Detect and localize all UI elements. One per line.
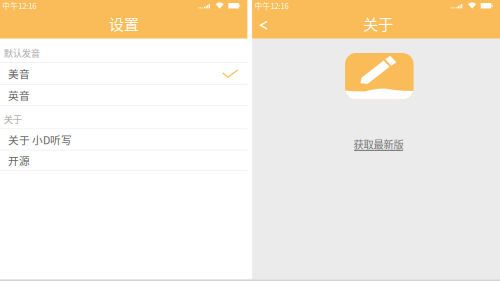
staticText: 设置 — [109, 12, 139, 34]
button[interactable]: 开源 — [0, 151, 248, 171]
staticText: 关于 — [4, 112, 22, 126]
staticText: 中午12:16 — [2, 0, 36, 11]
staticText: 中午12:16 — [254, 0, 288, 11]
staticText: 开源 — [8, 153, 30, 168]
staticText: 关于 — [363, 12, 393, 34]
button[interactable]: 获取最新版 — [354, 136, 404, 151]
button[interactable]: 英音 — [0, 85, 248, 106]
button[interactable]: 关于 小D听写 — [0, 129, 248, 151]
staticText: 获取最新版 — [354, 136, 404, 151]
staticText: 美音 — [8, 66, 30, 81]
staticText: 默认发音 — [4, 46, 40, 59]
button[interactable]: 美音 — [0, 63, 248, 85]
staticText: 关于 小D听写 — [8, 132, 72, 147]
button[interactable]: Back — [252, 12, 276, 37]
staticText: 英音 — [8, 87, 30, 103]
